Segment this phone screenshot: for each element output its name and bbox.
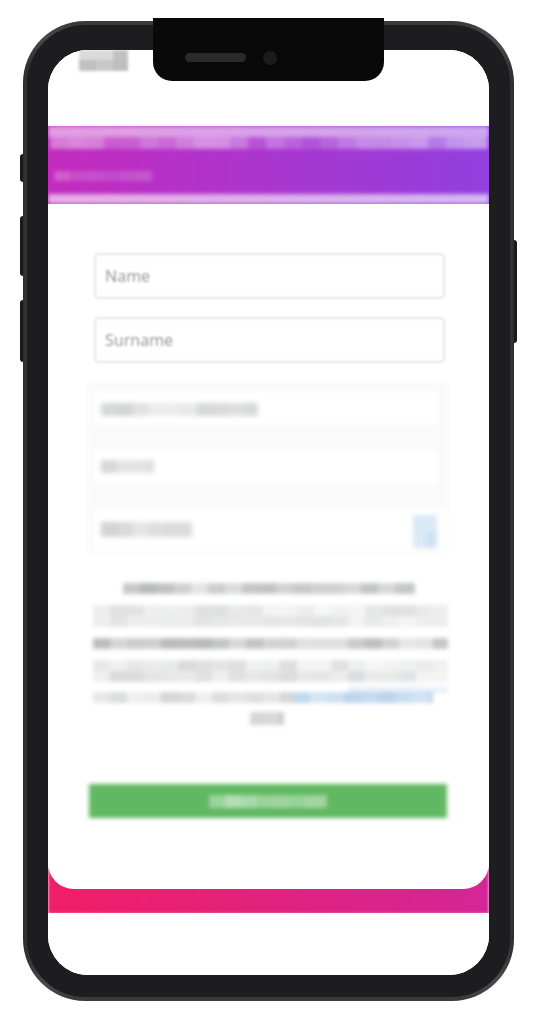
button[interactable] bbox=[48, 126, 489, 204]
button[interactable] bbox=[94, 391, 437, 425]
button[interactable] bbox=[94, 508, 447, 552]
button[interactable]: Name bbox=[94, 253, 445, 299]
other: Mute switch bbox=[20, 154, 26, 182]
staticText: Name bbox=[105, 265, 151, 287]
staticText: Surname bbox=[105, 329, 174, 351]
button[interactable] bbox=[89, 784, 447, 818]
other: Volume up bbox=[20, 216, 26, 276]
button[interactable]: Surname bbox=[94, 317, 445, 363]
other: Power bbox=[511, 240, 517, 343]
button[interactable] bbox=[94, 450, 437, 484]
other: Volume down bbox=[20, 300, 26, 362]
